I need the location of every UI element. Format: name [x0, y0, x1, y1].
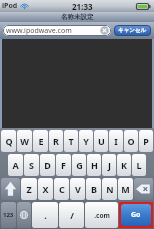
staticText: W: [20, 135, 29, 147]
button[interactable]: A: [8, 154, 23, 176]
button[interactable]: L: [132, 154, 146, 176]
button[interactable]: Q: [1, 130, 16, 152]
staticText: A: [12, 159, 19, 171]
staticText: 名称未設定: [61, 13, 94, 21]
staticText: U: [98, 135, 105, 147]
button[interactable]: U: [94, 130, 108, 152]
button[interactable]: I: [109, 130, 123, 152]
staticText: P: [143, 135, 149, 147]
button[interactable]: Clear text: [100, 26, 109, 35]
button[interactable]: N: [102, 178, 117, 200]
staticText: Go: [131, 210, 141, 220]
staticText: J: [108, 159, 111, 171]
staticText: Q: [5, 135, 13, 147]
button[interactable]: H: [87, 154, 101, 176]
button[interactable]: .com: [85, 202, 118, 228]
staticText: iPod: [2, 1, 18, 11]
button[interactable]: Y: [79, 130, 93, 152]
staticText: N: [106, 183, 114, 195]
button[interactable]: C: [54, 178, 69, 200]
staticText: O: [127, 135, 135, 147]
staticText: G: [76, 159, 83, 171]
staticText: /: [70, 209, 74, 221]
staticText: キャンセル: [118, 27, 147, 34]
staticText: Z: [26, 183, 32, 195]
button[interactable]: S: [24, 154, 39, 176]
button[interactable]: W: [17, 130, 32, 152]
button[interactable]: www.ipodwave.com: [3, 25, 111, 36]
staticText: E: [38, 135, 44, 147]
staticText: .: [44, 209, 47, 221]
staticText: S: [29, 159, 34, 171]
button[interactable]: M: [118, 178, 133, 200]
button[interactable]: G: [72, 154, 86, 176]
button[interactable]: Go: [121, 204, 151, 226]
staticText: 123: [3, 211, 14, 219]
staticText: L: [136, 159, 142, 171]
staticText: F: [61, 159, 66, 171]
button[interactable]: V: [70, 178, 85, 200]
staticText: R: [53, 135, 59, 147]
button[interactable]: Z: [21, 178, 37, 200]
staticText: X: [42, 183, 49, 195]
button[interactable]: Switch keyboard: [17, 202, 31, 228]
staticText: www.ipodwave.com: [6, 26, 72, 36]
button[interactable]: B: [86, 178, 101, 200]
button[interactable]: P: [139, 130, 153, 152]
staticText: B: [91, 183, 97, 195]
button[interactable]: J: [102, 154, 116, 176]
button[interactable]: R: [49, 130, 63, 152]
button[interactable]: D: [40, 154, 55, 176]
staticText: H: [91, 159, 98, 171]
button[interactable]: /: [59, 202, 84, 228]
button[interactable]: E: [33, 130, 48, 152]
staticText: D: [44, 159, 51, 171]
staticText: I: [114, 135, 118, 147]
staticText: .com: [94, 211, 110, 220]
button[interactable]: キャンセル: [114, 25, 151, 36]
button[interactable]: Shift: [1, 178, 20, 200]
button[interactable]: .: [32, 202, 58, 228]
button[interactable]: O: [124, 130, 138, 152]
staticText: T: [68, 135, 74, 147]
button[interactable]: 123: [1, 202, 16, 228]
staticText: V: [75, 183, 81, 195]
button[interactable]: X: [38, 178, 53, 200]
staticText: M: [121, 183, 130, 195]
staticText: Y: [83, 135, 89, 147]
staticText: K: [121, 159, 127, 171]
button[interactable]: T: [64, 130, 78, 152]
button[interactable]: Backspace: [134, 178, 153, 200]
button[interactable]: F: [56, 154, 71, 176]
staticText: C: [59, 183, 65, 195]
button[interactable]: K: [117, 154, 131, 176]
staticText: 21:33: [72, 1, 93, 12]
